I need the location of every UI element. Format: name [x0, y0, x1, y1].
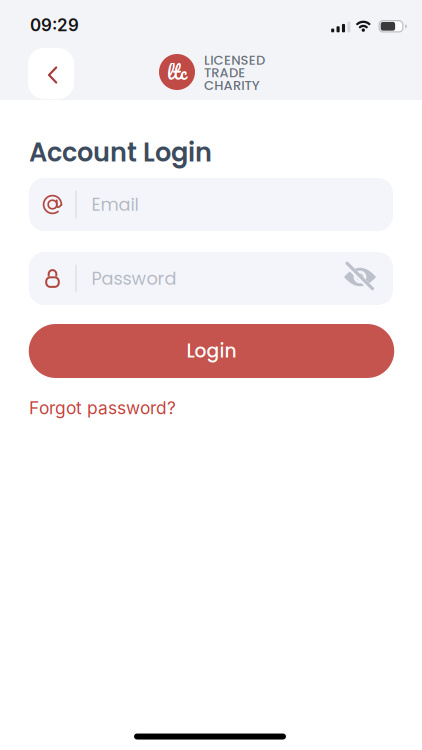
staticText: CHARITY: [204, 76, 260, 95]
staticText: TRADE: [204, 63, 245, 82]
staticText: 09:29: [30, 15, 79, 35]
staticText: Account Login: [29, 135, 212, 170]
staticText: Email: [91, 192, 138, 217]
button[interactable]: Forgot password?: [29, 397, 229, 418]
staticText: Forgot password?: [29, 397, 176, 418]
staticText: Login: [186, 338, 236, 364]
staticText: ltc: [167, 56, 187, 88]
staticText: LICENSED: [204, 51, 265, 69]
button[interactable]: Show password: [344, 266, 376, 288]
staticText: Password: [91, 266, 176, 291]
button[interactable]: Back: [28, 48, 74, 99]
button[interactable]: Login: [29, 324, 394, 378]
